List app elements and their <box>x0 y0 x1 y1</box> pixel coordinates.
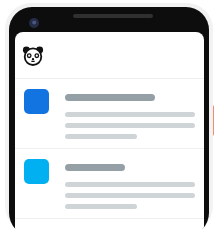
button[interactable] <box>15 149 204 218</box>
button[interactable] <box>15 79 204 148</box>
button[interactable]: Panda logo <box>21 44 45 68</box>
